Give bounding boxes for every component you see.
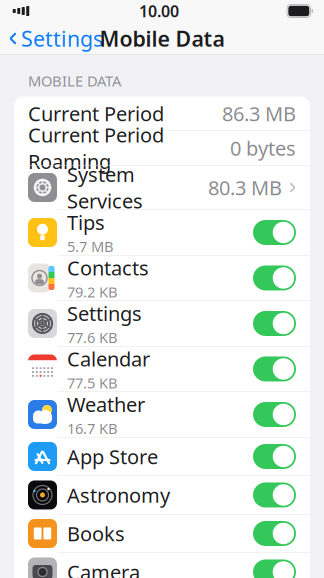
button[interactable]: Tips [14,210,310,255]
staticText: MOBILE DATA [28,71,121,90]
staticText: Current Period [28,100,164,127]
staticText: 77.6 KB [67,327,118,347]
button[interactable]: Current Period Roaming [14,131,310,165]
button[interactable]: Settings [0,19,103,58]
staticText: Contacts [67,254,149,281]
staticText: App Store [67,443,158,470]
staticText: Camera [67,559,140,578]
staticText: Tips [67,209,105,236]
button[interactable]: Camera [14,553,310,578]
staticText: 0 bytes [230,135,296,161]
staticText: 16.7 KB [67,418,118,438]
staticText: 5.7 MB [67,236,114,256]
button[interactable]: Contacts [14,255,310,300]
button[interactable]: Current Period [14,96,310,130]
button[interactable]: App Store [14,437,310,475]
staticText: Calendar [67,345,150,372]
staticText: Astronomy [67,482,170,508]
staticText: Mobile Data [99,24,224,53]
button[interactable]: Settings [14,301,310,346]
staticText: 86.3 MB [222,100,296,127]
staticText: Settings [21,24,103,53]
staticText: 10.00 [139,0,179,22]
staticText: Weather [67,391,145,418]
button[interactable]: Astronomy [14,476,310,514]
button[interactable]: Weather [14,392,310,437]
button[interactable]: System Services [14,165,310,209]
staticText: System Services [67,161,143,214]
button[interactable]: Calendar [14,346,310,391]
staticText: Settings [67,300,142,327]
staticText: 79.2 KB [67,282,118,301]
staticText: 80.3 MB [208,174,282,201]
button[interactable]: Books [14,514,310,552]
staticText: 77.5 KB [67,373,118,392]
staticText: Books [67,520,125,547]
staticText: Current Period Roaming [28,121,164,174]
